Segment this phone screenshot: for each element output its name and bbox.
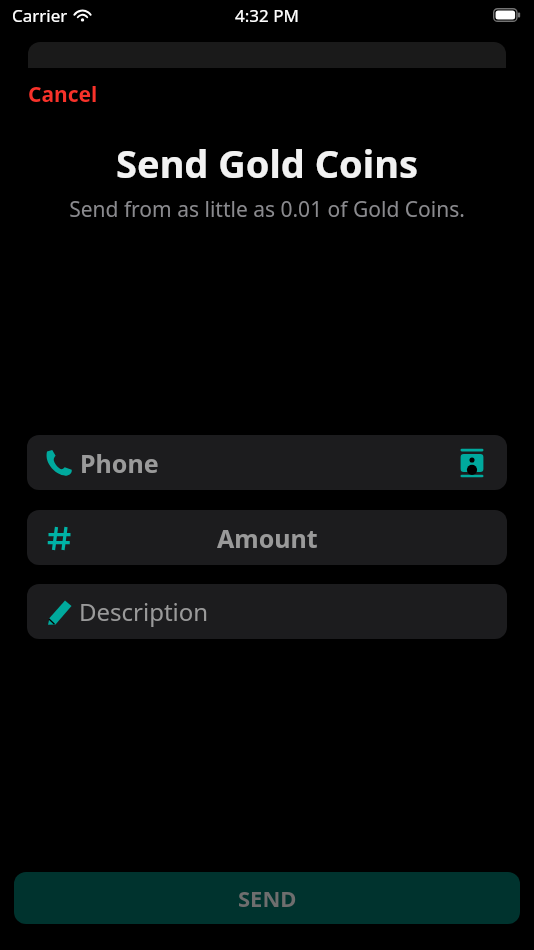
staticText: SEND <box>238 883 297 913</box>
staticText: Phone <box>80 446 159 480</box>
button[interactable]: SEND <box>14 872 520 924</box>
button[interactable]: Description <box>27 584 507 639</box>
button[interactable]: Choose contact <box>455 446 489 480</box>
button[interactable]: Cancel <box>20 76 106 113</box>
staticText: Description <box>79 595 209 628</box>
staticText: Carrier <box>12 4 68 27</box>
staticText: 4:32 PM <box>235 4 299 27</box>
button[interactable]: Phone <box>27 435 507 490</box>
staticText: Send Gold Coins <box>0 137 534 189</box>
staticText: Cancel <box>28 80 98 109</box>
button[interactable]: Amount <box>27 510 507 565</box>
staticText: Send from as little as 0.01 of Gold Coin… <box>0 195 534 224</box>
staticText: Amount <box>217 521 318 555</box>
